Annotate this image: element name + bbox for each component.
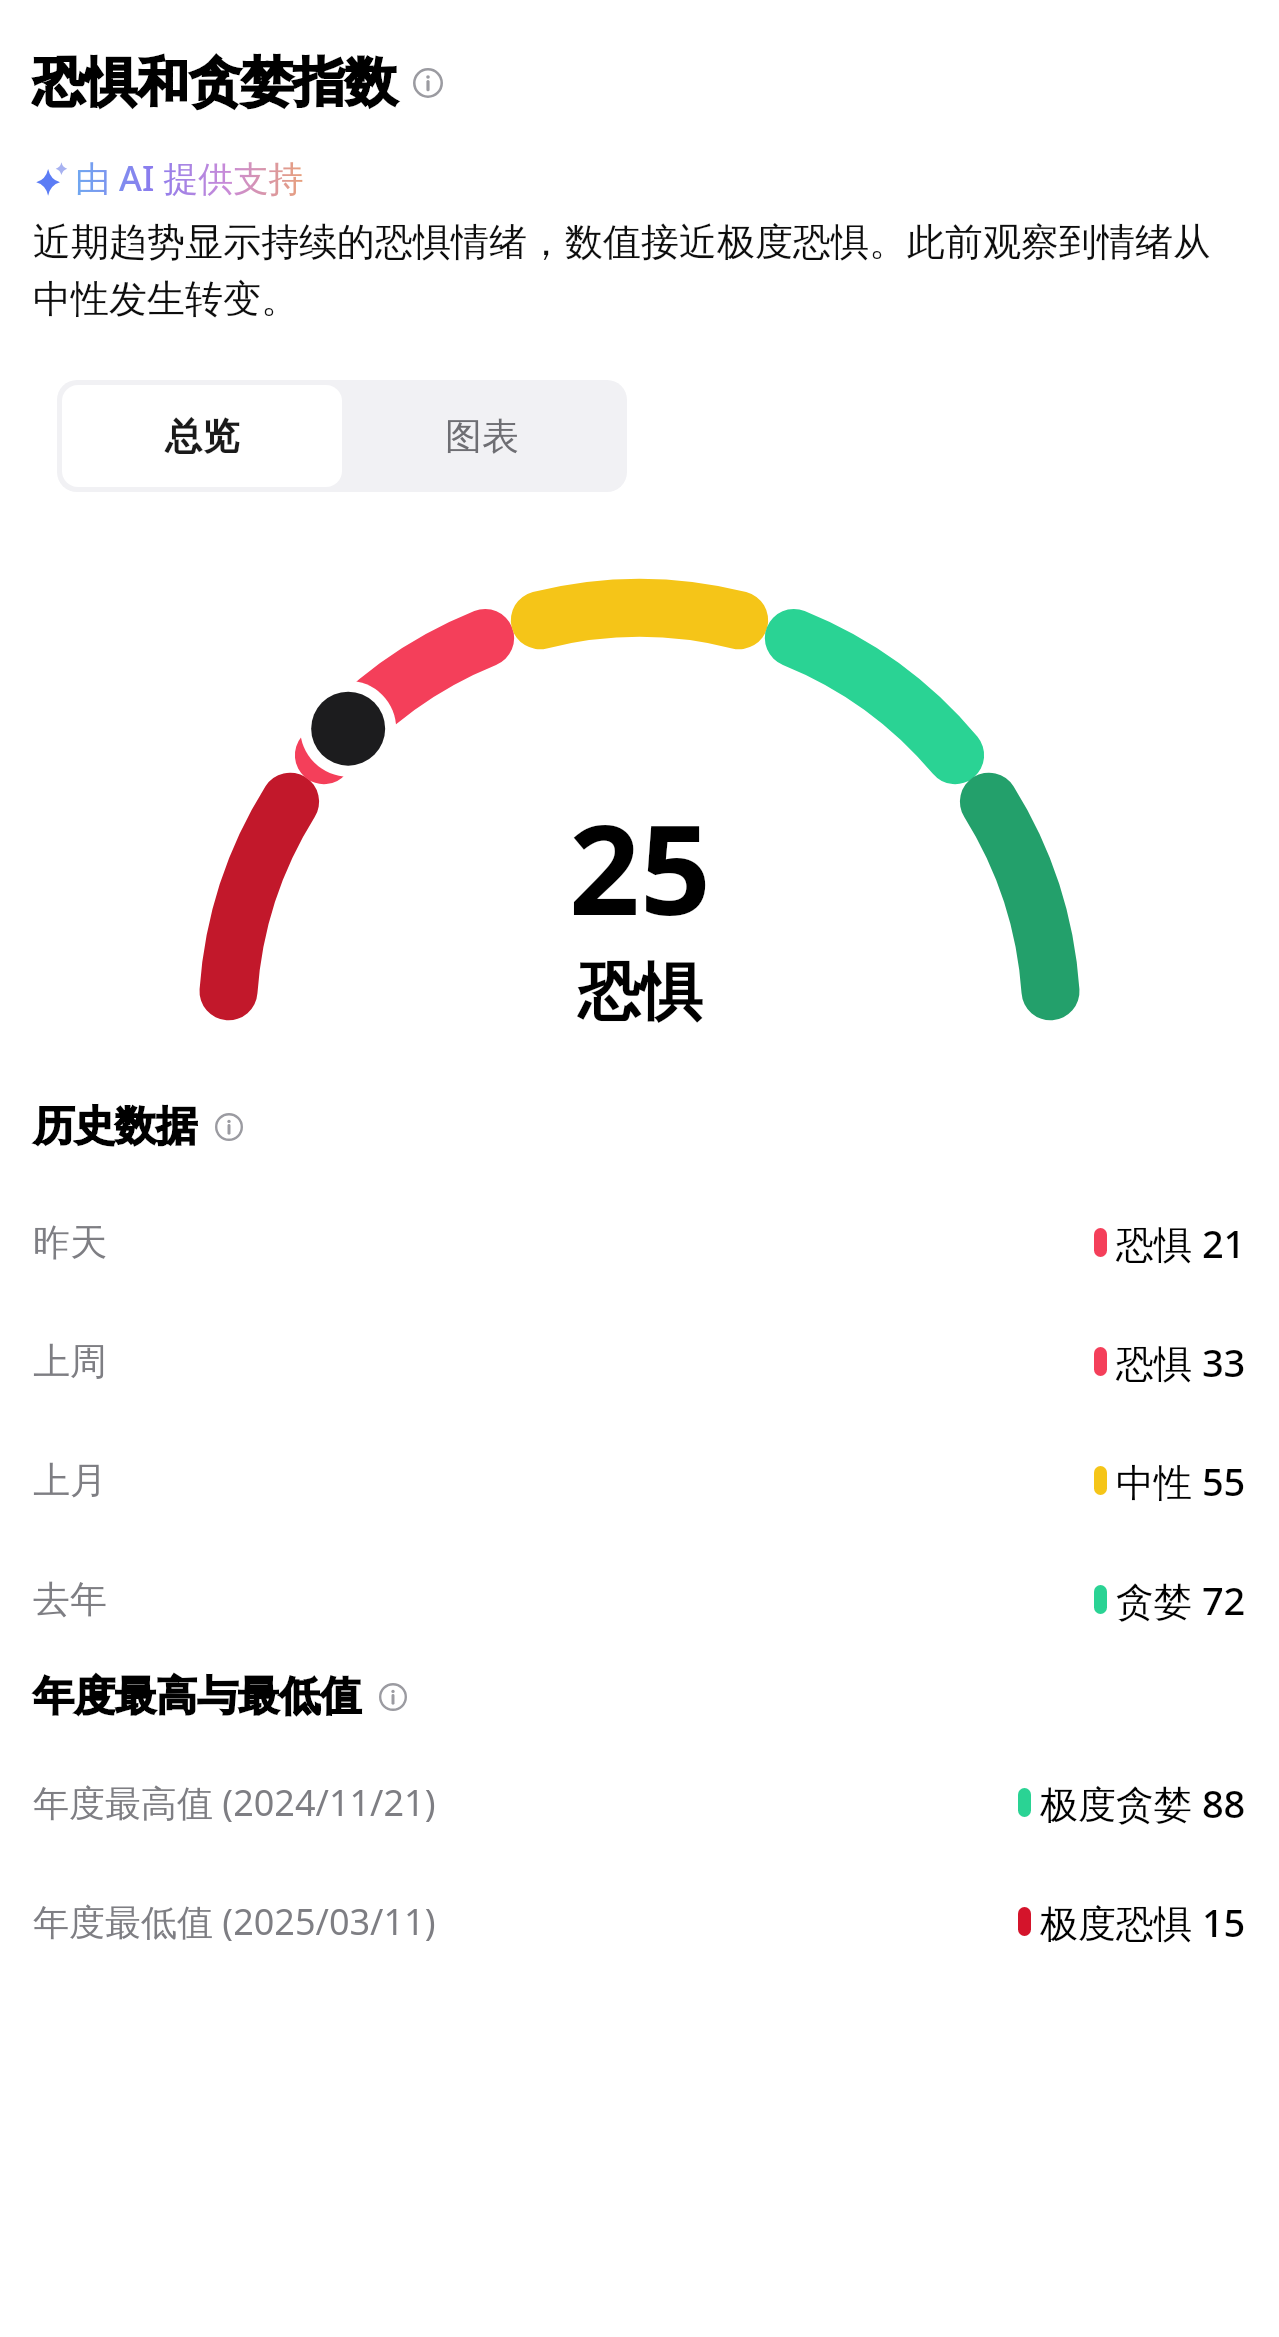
button[interactable]: 关于历史数据: [215, 1113, 243, 1141]
button[interactable]: 关于恐惧和贪婪指数: [413, 68, 443, 98]
staticText: 极度恐惧 15: [1040, 1896, 1246, 1948]
staticText: 总览: [165, 413, 239, 460]
staticText: 年度最高值 (2024/11/21): [33, 1778, 436, 1827]
staticText: 年度最高与最低值: [33, 1671, 361, 1723]
staticText: 恐惧: [578, 953, 702, 1031]
button[interactable]: 年度最高值 (2024/11/21): [0, 1743, 1279, 1862]
staticText: 极度贪婪 88: [1040, 1777, 1246, 1829]
button[interactable]: 上月: [0, 1421, 1279, 1540]
button[interactable]: 年度最低值 (2025/03/11): [0, 1862, 1279, 1981]
staticText: 去年: [33, 1576, 107, 1623]
staticText: 历史数据: [33, 1101, 197, 1153]
button[interactable]: 关于年度最高与最低值: [379, 1683, 407, 1711]
staticText: 年度最低值 (2025/03/11): [33, 1897, 436, 1946]
button[interactable]: 上周: [0, 1302, 1279, 1421]
button[interactable]: 去年: [0, 1540, 1279, 1659]
button[interactable]: 图表: [342, 385, 622, 487]
staticText: 25: [569, 782, 711, 951]
staticText: 恐惧和贪婪指数: [33, 50, 397, 116]
button[interactable]: 昨天: [0, 1183, 1279, 1302]
staticText: 上月: [33, 1457, 107, 1504]
staticText: 恐惧 21: [1116, 1217, 1246, 1269]
staticText: 图表: [445, 413, 519, 460]
staticText: 贪婪 72: [1116, 1574, 1246, 1626]
staticText: 昨天: [33, 1219, 107, 1266]
button[interactable]: 总览: [62, 385, 342, 487]
staticText: 由 AI 提供支持: [75, 154, 304, 202]
staticText: 上周: [33, 1338, 107, 1385]
staticText: 中性 55: [1116, 1455, 1246, 1507]
staticText: 近期趋势显示持续的恐惧情绪，数值接近极度恐惧。此前观察到情绪从中性发生转变。: [33, 218, 1239, 324]
staticText: 恐惧 33: [1116, 1336, 1246, 1388]
